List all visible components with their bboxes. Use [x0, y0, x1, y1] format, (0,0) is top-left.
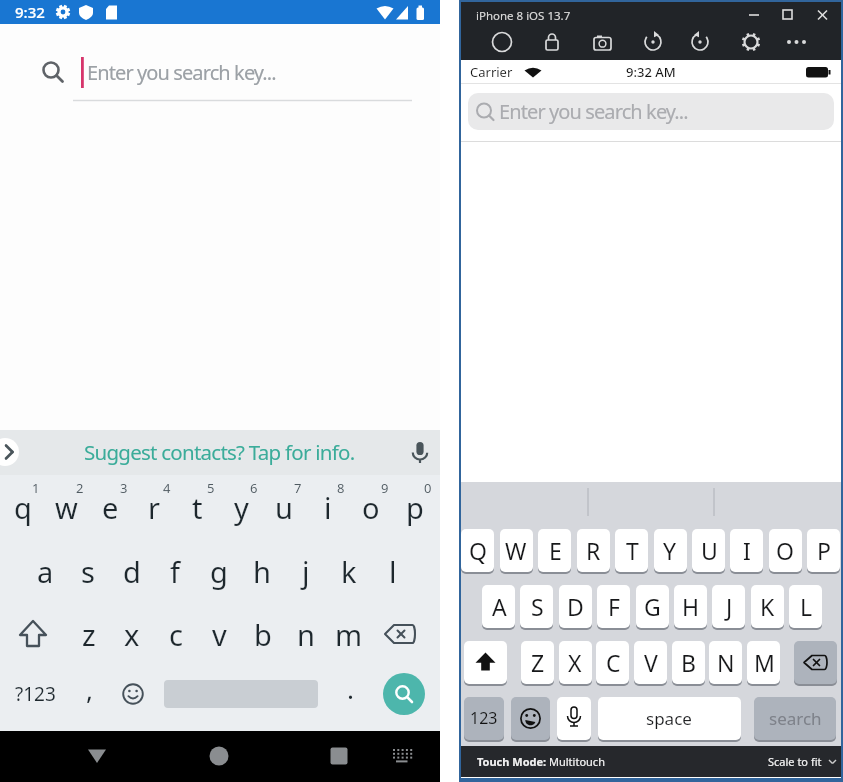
button[interactable] — [384, 736, 424, 776]
button[interactable] — [597, 585, 630, 628]
button[interactable] — [464, 697, 504, 740]
button[interactable] — [709, 641, 742, 684]
staticText: . — [347, 671, 354, 706]
button[interactable] — [794, 641, 837, 684]
button[interactable] — [328, 668, 372, 720]
button[interactable] — [383, 673, 425, 715]
button[interactable] — [393, 478, 437, 535]
button[interactable] — [807, 529, 840, 572]
button[interactable] — [782, 30, 810, 56]
button[interactable] — [557, 697, 591, 740]
button[interactable] — [1, 478, 45, 535]
button[interactable] — [240, 541, 284, 601]
button[interactable] — [577, 529, 610, 572]
button[interactable] — [461, 529, 494, 572]
button[interactable] — [199, 736, 239, 776]
button[interactable] — [219, 478, 263, 535]
button[interactable]: Scale to fit — [700, 748, 822, 775]
button[interactable] — [488, 30, 516, 56]
button[interactable] — [482, 585, 515, 628]
staticText: space — [646, 707, 692, 730]
button[interactable] — [328, 604, 372, 664]
button[interactable] — [468, 93, 834, 130]
button[interactable] — [11, 668, 59, 720]
button[interactable] — [319, 736, 359, 776]
button[interactable] — [0, 438, 19, 466]
button[interactable] — [0, 430, 440, 475]
button[interactable] — [198, 604, 242, 664]
button[interactable] — [654, 529, 687, 572]
button[interactable] — [789, 585, 822, 628]
button[interactable] — [464, 641, 507, 684]
button[interactable] — [672, 641, 705, 684]
staticText: R — [586, 535, 601, 566]
button[interactable] — [197, 541, 241, 601]
button[interactable] — [511, 697, 550, 740]
button[interactable] — [67, 668, 111, 720]
button[interactable] — [769, 529, 802, 572]
button[interactable] — [262, 478, 306, 535]
staticText: 3 — [120, 479, 128, 497]
button[interactable] — [559, 585, 592, 628]
button[interactable] — [241, 604, 285, 664]
button[interactable] — [67, 604, 111, 664]
button[interactable] — [674, 585, 707, 628]
button[interactable] — [774, 2, 800, 28]
staticText: o — [362, 488, 380, 527]
button[interactable] — [36, 52, 426, 102]
staticText: b — [254, 615, 272, 654]
button[interactable] — [500, 529, 533, 572]
button[interactable] — [284, 541, 328, 601]
button[interactable] — [382, 608, 426, 660]
button[interactable] — [808, 2, 834, 28]
button[interactable] — [751, 585, 784, 628]
button[interactable] — [598, 697, 741, 740]
staticText: 0 — [424, 479, 432, 497]
button[interactable] — [154, 604, 198, 664]
button[interactable] — [754, 697, 836, 740]
button[interactable] — [371, 541, 415, 601]
button[interactable] — [636, 585, 669, 628]
button[interactable] — [66, 541, 110, 601]
button[interactable] — [692, 529, 725, 572]
button[interactable] — [284, 604, 328, 664]
button[interactable] — [45, 478, 89, 535]
staticText: 5 — [207, 479, 215, 497]
button[interactable] — [639, 30, 667, 56]
button[interactable] — [521, 641, 554, 684]
button[interactable] — [588, 30, 616, 56]
button[interactable] — [111, 668, 155, 720]
button[interactable] — [175, 478, 219, 535]
button[interactable] — [686, 30, 714, 56]
button[interactable] — [538, 529, 571, 572]
staticText: L — [800, 591, 813, 622]
staticText: O — [776, 535, 794, 566]
staticText: Enter you search key... — [499, 98, 688, 125]
staticText: r — [148, 488, 160, 527]
button[interactable] — [153, 541, 197, 601]
button[interactable] — [111, 604, 155, 664]
button[interactable] — [88, 478, 132, 535]
button[interactable] — [712, 585, 745, 628]
button[interactable] — [11, 608, 55, 660]
button[interactable] — [327, 541, 371, 601]
button[interactable] — [737, 30, 765, 56]
button[interactable] — [23, 541, 67, 601]
button[interactable] — [730, 529, 763, 572]
button[interactable] — [520, 585, 553, 628]
button[interactable] — [634, 641, 667, 684]
button[interactable] — [77, 736, 117, 776]
button[interactable] — [741, 2, 767, 28]
button[interactable] — [132, 478, 176, 535]
button[interactable] — [596, 641, 629, 684]
button[interactable] — [615, 529, 648, 572]
button[interactable] — [306, 478, 350, 535]
button[interactable] — [110, 541, 154, 601]
button[interactable] — [538, 30, 566, 56]
staticText: e — [102, 488, 119, 527]
staticText: h — [253, 552, 271, 591]
button[interactable] — [747, 641, 780, 684]
button[interactable] — [350, 478, 394, 535]
button[interactable] — [559, 641, 592, 684]
